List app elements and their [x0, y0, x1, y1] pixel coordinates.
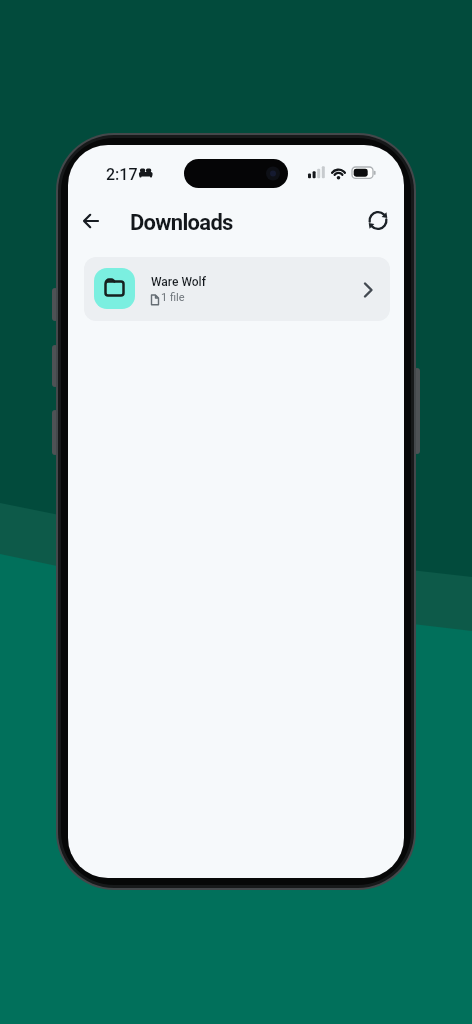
- staticText: 1 file: [161, 291, 185, 304]
- button[interactable]: [365, 207, 391, 234]
- staticText: Downloads: [130, 210, 233, 236]
- staticText: Ware Wolf: [151, 275, 206, 289]
- button[interactable]: [79, 209, 103, 233]
- staticText: 2:17: [106, 165, 138, 184]
- button[interactable]: Ware Wolf: [84, 257, 390, 321]
